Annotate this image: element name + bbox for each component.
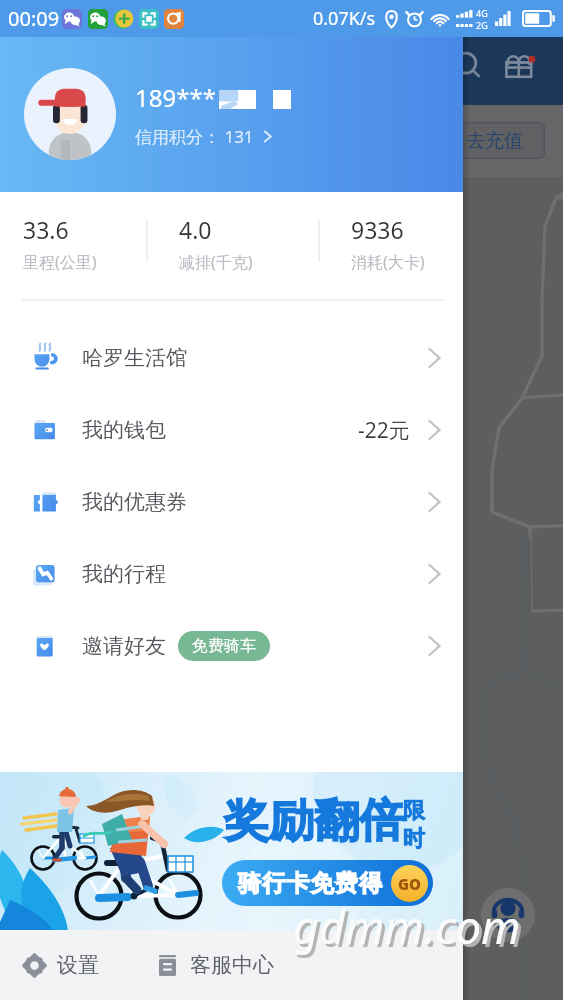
staticText: 里程(公里): [23, 251, 97, 273]
staticText: gdmm.com: [296, 899, 524, 960]
button[interactable]: 信用积分： 131: [135, 125, 276, 148]
button[interactable]: 设置: [0, 940, 111, 990]
button[interactable]: 哈罗生活馆: [0, 322, 463, 394]
button[interactable]: Gifts: [500, 48, 540, 88]
staticText: 邀请好友: [82, 633, 166, 659]
button[interactable]: 我的行程: [0, 538, 463, 610]
button[interactable]: 去充值: [443, 122, 545, 159]
staticText: 33.6: [23, 214, 69, 245]
button[interactable]: 奖励翻倍: [0, 772, 463, 930]
staticText: 00:09: [8, 5, 60, 32]
staticText: 4G: [476, 7, 488, 19]
button[interactable]: 我的钱包: [0, 394, 463, 466]
button[interactable]: 我的优惠券: [0, 466, 463, 538]
staticText: 减排(千克): [179, 251, 253, 273]
staticText: 消耗(大卡): [351, 251, 425, 273]
staticText: 设置: [57, 952, 99, 978]
button[interactable]: 客服中心: [143, 940, 286, 990]
staticText: 骑行卡免费得: [238, 869, 384, 898]
staticText: 信用积分： 131: [135, 125, 254, 148]
staticText: 我的行程: [82, 561, 166, 587]
staticText: 4.0: [179, 214, 212, 245]
button[interactable]: Search: [450, 48, 486, 84]
staticText: GO: [398, 874, 422, 894]
staticText: 9336: [351, 214, 404, 245]
staticText: 奖励翻倍: [224, 793, 404, 850]
staticText: 我的优惠券: [82, 489, 187, 515]
staticText: 2G: [476, 19, 488, 31]
staticText: 免费骑车: [192, 636, 256, 656]
staticText: 189***: [135, 81, 216, 114]
button[interactable]: 邀请好友: [0, 610, 463, 682]
staticText: 限: [403, 797, 425, 825]
staticText: 0.07K/s: [313, 6, 376, 31]
staticText: 时: [403, 825, 425, 853]
staticText: 客服中心: [190, 952, 274, 978]
staticText: 去充值: [466, 129, 523, 153]
staticText: -22元: [358, 416, 410, 445]
button[interactable]: Customer service: [481, 888, 535, 942]
staticText: 我的钱包: [82, 417, 166, 443]
staticText: gdmm.com: [293, 896, 521, 957]
staticText: 哈罗生活馆: [82, 345, 187, 371]
